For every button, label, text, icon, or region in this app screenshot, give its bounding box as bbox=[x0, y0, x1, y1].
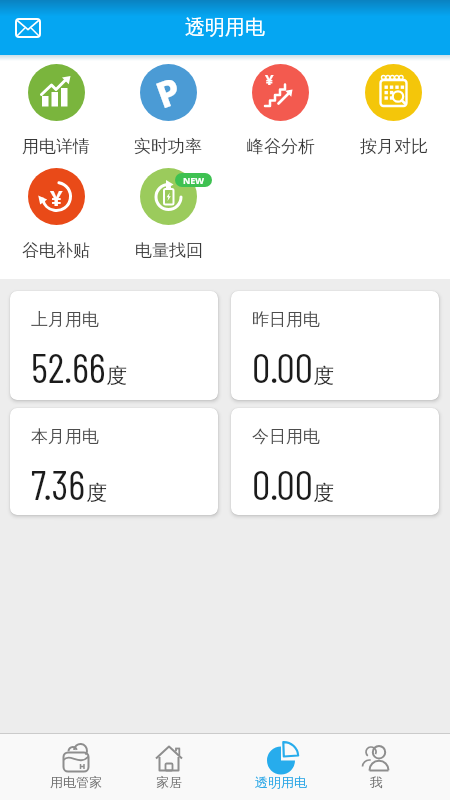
button[interactable]: NEW bbox=[112, 168, 225, 261]
staticText: 按月对比 bbox=[360, 136, 428, 157]
staticText: 透明用电 bbox=[255, 774, 307, 790]
staticText: 7.36 bbox=[31, 459, 86, 508]
staticText: P bbox=[149, 65, 188, 119]
button[interactable]: 家居 bbox=[113, 733, 225, 800]
button[interactable]: 今日用电 bbox=[231, 408, 439, 515]
staticText: 谷电补贴 bbox=[22, 240, 90, 261]
button[interactable]: 用电管家 bbox=[20, 733, 132, 800]
button[interactable]: 上月用电 bbox=[10, 291, 218, 400]
button[interactable]: ¥ bbox=[224, 64, 337, 157]
button[interactable]: 本月用电 bbox=[10, 408, 218, 515]
staticText: 我 bbox=[370, 774, 383, 790]
staticText: 电量找回 bbox=[135, 240, 203, 261]
button[interactable]: 我 bbox=[320, 733, 432, 800]
staticText: ¥ bbox=[265, 69, 274, 89]
staticText: 度 bbox=[86, 480, 107, 506]
staticText: 0.00 bbox=[252, 459, 313, 508]
staticText: 实时功率 bbox=[134, 136, 202, 157]
staticText: 52.66 bbox=[31, 342, 106, 391]
staticText: 度 bbox=[106, 363, 127, 389]
button[interactable]: 透明用电 bbox=[225, 733, 337, 800]
staticText: 用电管家 bbox=[50, 774, 102, 790]
button[interactable] bbox=[11, 13, 45, 43]
staticText: 本月用电 bbox=[31, 426, 99, 447]
button[interactable]: P bbox=[112, 64, 224, 157]
staticText: 度 bbox=[313, 480, 334, 506]
button[interactable]: 用电详情 bbox=[0, 64, 112, 157]
staticText: ¥ bbox=[50, 182, 63, 212]
staticText: 今日用电 bbox=[252, 426, 320, 447]
button[interactable]: 昨日用电 bbox=[231, 291, 439, 400]
staticText: 上月用电 bbox=[31, 309, 99, 330]
staticText: 0.00 bbox=[252, 342, 313, 391]
staticText: 昨日用电 bbox=[252, 309, 320, 330]
staticText: 透明用电 bbox=[185, 15, 265, 40]
staticText: 用电详情 bbox=[22, 136, 90, 157]
button[interactable]: ¥ bbox=[0, 168, 112, 261]
staticText: 家居 bbox=[156, 774, 182, 790]
staticText: 峰谷分析 bbox=[247, 136, 315, 157]
staticText: NEW bbox=[183, 174, 205, 186]
staticText: 度 bbox=[313, 363, 334, 389]
button[interactable]: 按月对比 bbox=[337, 64, 450, 157]
